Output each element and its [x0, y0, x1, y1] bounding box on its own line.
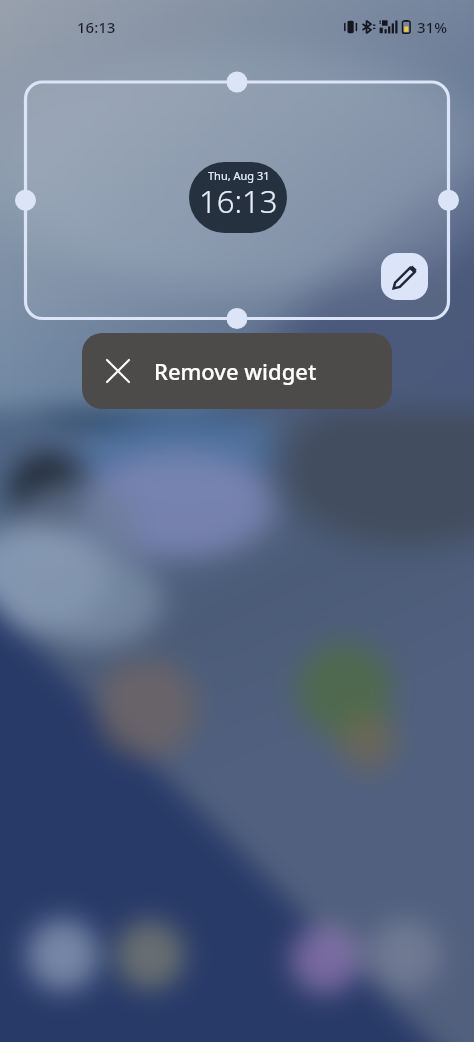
staticText: Remove widget [154, 356, 317, 386]
staticText: 31% [417, 17, 447, 37]
button[interactable]: Edit widget [381, 253, 428, 300]
button[interactable]: Thu, Aug 31 [189, 162, 287, 233]
staticText: 16:13 [199, 180, 278, 222]
staticText: Thu, Aug 31 [208, 168, 270, 183]
button[interactable]: Remove widget [82, 333, 392, 409]
staticText: 16:13 [77, 17, 116, 37]
